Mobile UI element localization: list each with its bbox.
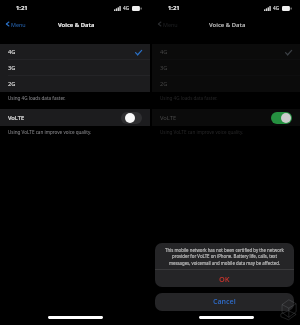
staticText: 4G <box>123 5 130 11</box>
button[interactable]: 4G <box>0 44 150 60</box>
staticText: Menu <box>11 21 26 28</box>
staticText: Menu <box>163 21 178 28</box>
staticText: Using 4G loads data faster. <box>8 95 66 101</box>
staticText: 2G <box>8 80 16 88</box>
button[interactable]: Cancel <box>155 293 294 311</box>
button[interactable]: Menu <box>5 20 26 28</box>
staticText: This mobile network has not been certifi… <box>161 247 288 266</box>
button[interactable]: 4G <box>152 44 300 60</box>
staticText: Cancel <box>213 297 236 307</box>
staticText: OK <box>219 274 230 284</box>
button[interactable]: 2G <box>0 76 150 92</box>
staticText: Using VoLTE can improve voice quality. <box>160 129 244 135</box>
button[interactable]: OK <box>155 270 294 287</box>
staticText: 3G <box>8 64 16 72</box>
staticText: VoLTE <box>8 114 25 122</box>
button[interactable]: VoLTE toggle <box>271 112 292 124</box>
staticText: Voice & Data <box>209 21 246 29</box>
button[interactable]: VoLTE toggle <box>121 112 142 124</box>
staticText: 1:21 <box>168 4 180 12</box>
button[interactable]: Menu <box>157 20 178 28</box>
staticText: Using 4G loads data faster. <box>160 95 218 101</box>
staticText: VoLTE <box>160 114 177 122</box>
staticText: 1:21 <box>16 4 28 12</box>
staticText: 4G <box>160 48 168 56</box>
staticText: 4G <box>273 5 280 11</box>
staticText: Voice & Data <box>58 21 95 29</box>
button[interactable]: 3G <box>0 60 150 76</box>
staticText: 4G <box>8 48 16 56</box>
staticText: 3G <box>160 64 168 72</box>
staticText: 2G <box>160 80 168 88</box>
staticText: Using VoLTE can improve voice quality. <box>8 129 92 135</box>
